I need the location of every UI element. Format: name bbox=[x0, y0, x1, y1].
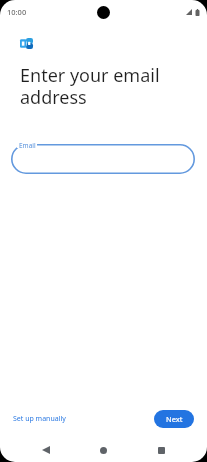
button[interactable]: Back bbox=[34, 438, 58, 462]
staticText: Email bbox=[19, 141, 36, 150]
staticText: 10:00 bbox=[7, 7, 27, 17]
staticText: Enter your email address bbox=[20, 63, 180, 110]
button[interactable]: Home bbox=[91, 438, 115, 462]
button[interactable]: Set up manually bbox=[9, 410, 70, 428]
staticText: Set up manually bbox=[13, 414, 66, 424]
staticText: Next bbox=[166, 414, 183, 424]
button[interactable]: Recent apps bbox=[149, 438, 173, 462]
button[interactable]: Next bbox=[154, 410, 194, 428]
